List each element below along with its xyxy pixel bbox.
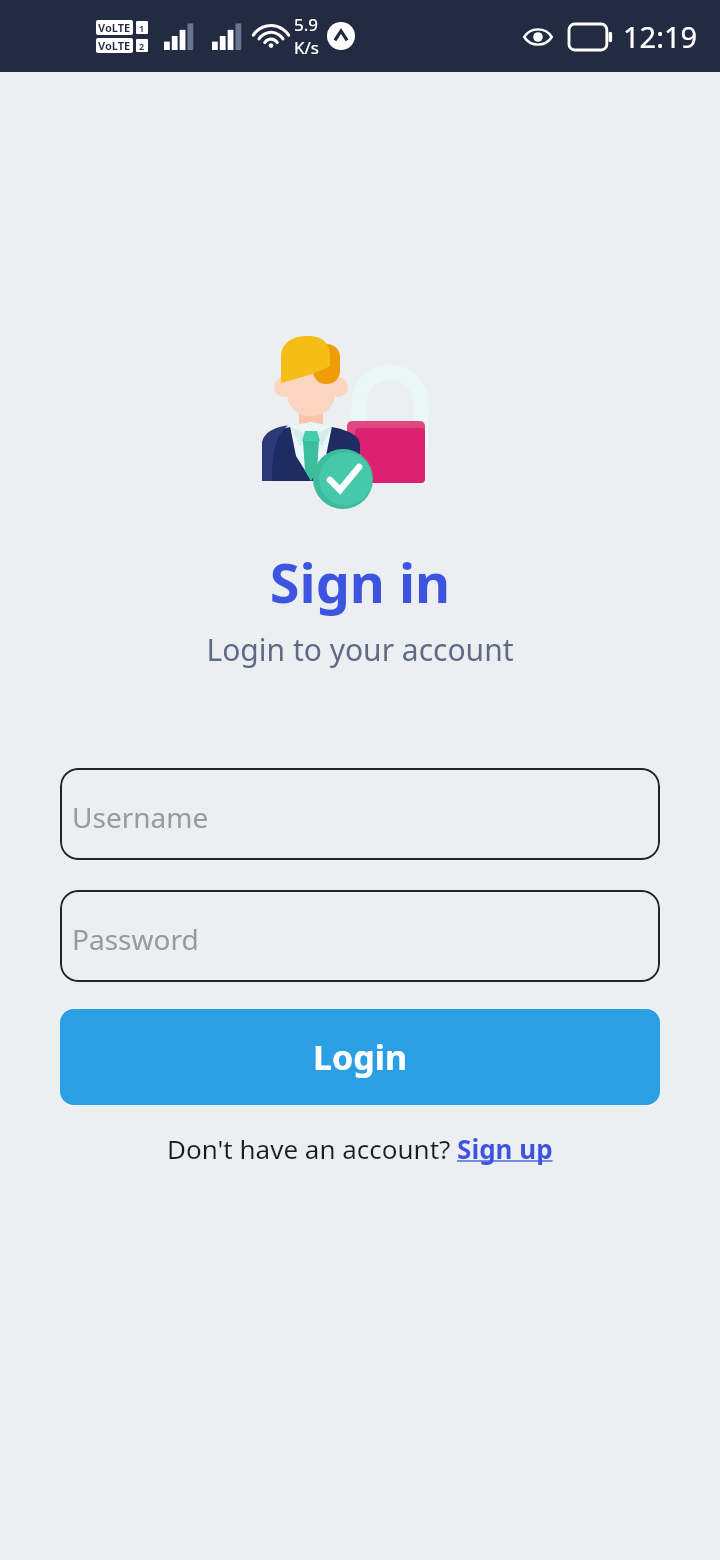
button[interactable]: Password (60, 890, 660, 982)
staticText: 12:19 (623, 17, 698, 56)
button[interactable]: Username (60, 768, 660, 860)
staticText: 5.9 (294, 13, 319, 36)
staticText: 2 (139, 40, 145, 52)
staticText: Login (313, 1034, 408, 1080)
staticText: VoLTE (98, 20, 131, 35)
staticText: Don't have an account? Sign up (167, 1131, 553, 1166)
staticText: Login to your account (0, 629, 720, 670)
button[interactable]: Login (60, 1009, 660, 1105)
staticText: Sign in (0, 545, 720, 619)
button[interactable]: Don't have an account? Sign up (167, 1131, 553, 1166)
staticText: K/s (294, 36, 319, 59)
staticText: Username (72, 798, 209, 836)
staticText: Password (72, 920, 199, 958)
staticText: 1 (139, 22, 145, 34)
staticText: VoLTE (98, 38, 131, 53)
